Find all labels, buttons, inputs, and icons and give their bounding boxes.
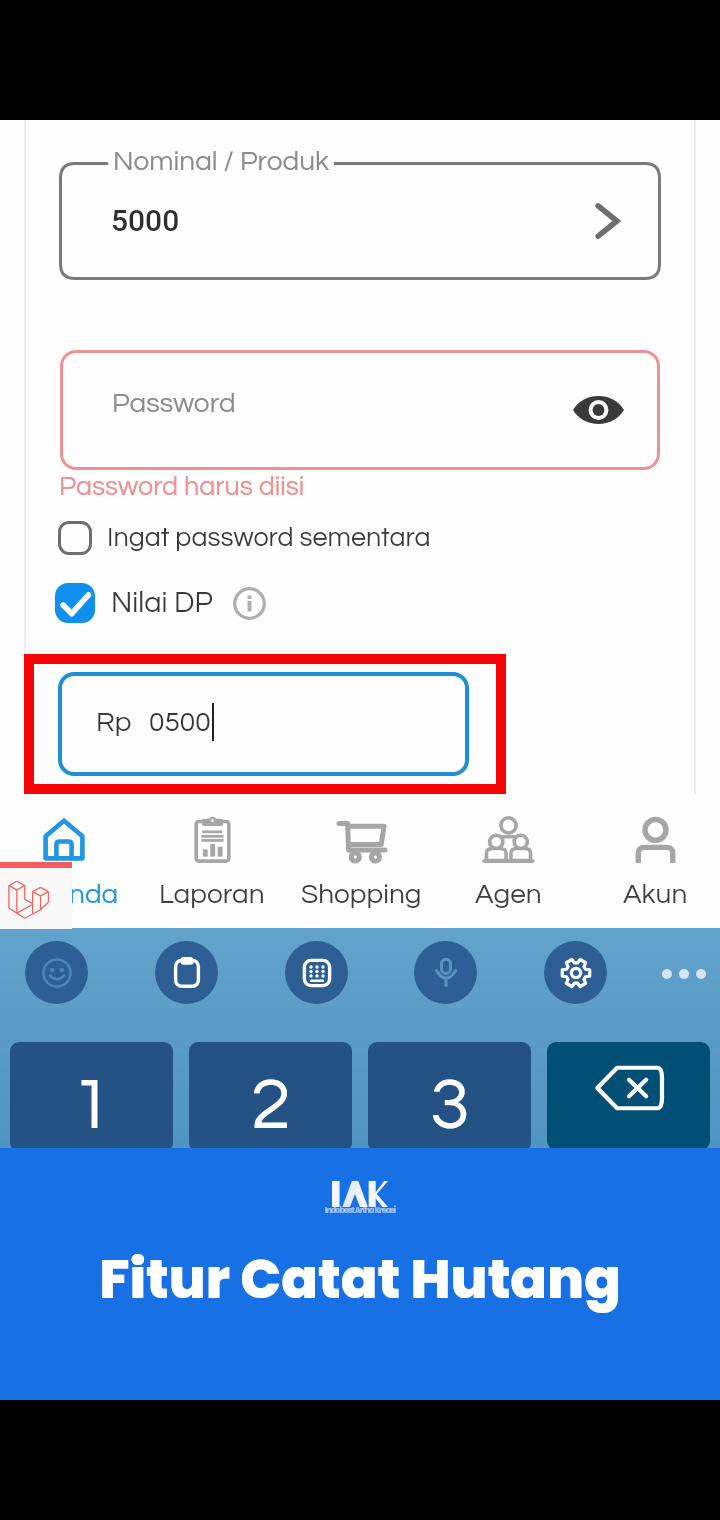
staticText: 0500 (149, 708, 211, 737)
button[interactable]: Ingat password sementara (54, 516, 431, 560)
button[interactable]: Keyboard option (414, 941, 477, 1004)
button[interactable]: Password (60, 350, 660, 470)
staticText: Password harus diisi (59, 473, 305, 501)
staticText: Nilai DP (111, 588, 213, 618)
staticText: Rp (96, 708, 132, 737)
button[interactable]: Keyboard option (285, 941, 348, 1004)
button[interactable]: Info (231, 585, 267, 621)
button[interactable]: 1 (10, 1042, 173, 1152)
button[interactable]: More options (660, 964, 708, 984)
button[interactable]: Rp (58, 672, 469, 776)
staticText: Indobest Artha Kreasi (0, 1205, 720, 1216)
staticText: Beranda (9, 880, 119, 909)
staticText: Ingat password sementara (107, 524, 431, 552)
button[interactable]: Keyboard option (25, 941, 88, 1004)
staticText: Password (112, 389, 236, 418)
button[interactable]: Akun (583, 795, 720, 928)
staticText: 1 (72, 1069, 112, 1143)
button[interactable] (55, 583, 95, 623)
button[interactable]: Laporan (140, 795, 284, 928)
staticText: 2 (251, 1069, 291, 1143)
button[interactable]: Keyboard option (544, 941, 607, 1004)
button[interactable]: Beranda (0, 795, 136, 928)
button[interactable]: Backspace (547, 1042, 710, 1150)
staticText: Agen (475, 880, 542, 909)
button[interactable]: Laravel (0, 862, 72, 929)
staticText: Fitur Catat Hutang (0, 1241, 720, 1317)
button[interactable]: Keyboard option (155, 941, 218, 1004)
button[interactable]: Show password (570, 382, 626, 438)
staticText: 3 (430, 1069, 470, 1143)
button[interactable]: Shopping (289, 795, 433, 928)
staticText: Laporan (159, 880, 265, 909)
staticText: Akun (623, 880, 688, 909)
staticText: 5000 (111, 203, 180, 238)
button[interactable]: 2 (189, 1042, 352, 1152)
staticText: Nominal / Produk (113, 147, 330, 176)
button[interactable]: 3 (368, 1042, 531, 1152)
button[interactable]: Agen (436, 795, 580, 928)
staticText: Shopping (301, 880, 422, 909)
